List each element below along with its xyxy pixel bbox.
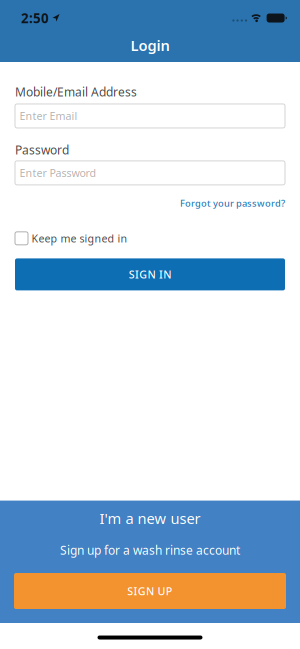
button[interactable]: SIGN UP	[14, 573, 286, 609]
staticText: Login	[130, 35, 169, 55]
staticText: 2:50	[21, 9, 49, 27]
button[interactable]: SIGN IN	[15, 258, 285, 290]
button[interactable]: Enter Email	[15, 104, 285, 128]
button[interactable]: Enter Password	[15, 161, 285, 185]
staticText: Enter Email	[19, 109, 77, 123]
button[interactable]: Keep me signed in	[15, 231, 127, 245]
staticText: Enter Password	[19, 166, 96, 180]
staticText: Sign up for a wash rinse account	[60, 542, 240, 558]
staticText: SIGN UP	[127, 584, 173, 598]
staticText: Mobile/Email Address	[15, 84, 137, 100]
staticText: Keep me signed in	[31, 231, 127, 245]
staticText: Password	[15, 142, 69, 158]
staticText: Forgot your password?	[180, 197, 285, 209]
staticText: I'm a new user	[99, 509, 200, 528]
button[interactable]: Forgot your password?	[180, 197, 285, 209]
staticText: SIGN IN	[129, 267, 171, 281]
